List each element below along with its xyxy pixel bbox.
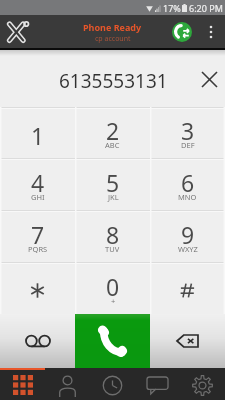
button[interactable]: [150, 262, 225, 314]
staticText: 5: [106, 167, 120, 198]
button[interactable]: 1: [0, 107, 75, 158]
button[interactable]: 2: [75, 107, 150, 158]
button[interactable]: 6: [150, 158, 225, 210]
button[interactable]: Call: [75, 314, 150, 368]
button[interactable]: Clear: [190, 60, 225, 98]
staticText: 6: [181, 167, 195, 198]
staticText: WXYZ: [178, 244, 198, 254]
button[interactable]: 5: [75, 158, 150, 210]
button[interactable]: Menu: [0, 15, 36, 48]
button[interactable]: Backspace: [150, 314, 225, 368]
staticText: GHI: [31, 192, 45, 202]
staticText: cp account: [95, 34, 131, 44]
staticText: 3: [181, 115, 195, 146]
button[interactable]: Keypad: [0, 368, 45, 400]
button[interactable]: Contacts: [45, 368, 90, 400]
staticText: 6:20 PM: [189, 2, 223, 14]
staticText: 9: [181, 219, 195, 250]
staticText: JKL: [108, 192, 119, 202]
button[interactable]: 0: [75, 262, 150, 314]
button[interactable]: Transfer call: [167, 17, 197, 47]
staticText: 1: [31, 120, 45, 151]
staticText: 2: [106, 115, 120, 146]
staticText: 17%: [163, 2, 181, 14]
button[interactable]: Settings: [180, 368, 225, 400]
button[interactable]: More options: [197, 19, 225, 45]
staticText: 6135553131: [59, 68, 168, 94]
staticText: 4: [31, 167, 45, 198]
staticText: 7: [31, 219, 45, 250]
staticText: 0: [106, 271, 120, 302]
staticText: 8: [106, 219, 120, 250]
button[interactable]: 7: [0, 210, 75, 262]
staticText: Phone Ready: [83, 21, 142, 33]
button[interactable]: [0, 262, 75, 314]
staticText: DEF: [181, 140, 195, 150]
staticText: MNO: [178, 192, 197, 202]
button[interactable]: Recents: [90, 368, 135, 400]
staticText: TUV: [105, 244, 120, 254]
button[interactable]: 4: [0, 158, 75, 210]
button[interactable]: Voicemail: [0, 314, 75, 368]
staticText: ABC: [105, 140, 120, 150]
button[interactable]: Messages: [135, 368, 180, 400]
button[interactable]: 9: [150, 210, 225, 262]
staticText: +: [111, 296, 116, 306]
button[interactable]: 3: [150, 107, 225, 158]
button[interactable]: 8: [75, 210, 150, 262]
staticText: PQRS: [28, 244, 48, 254]
